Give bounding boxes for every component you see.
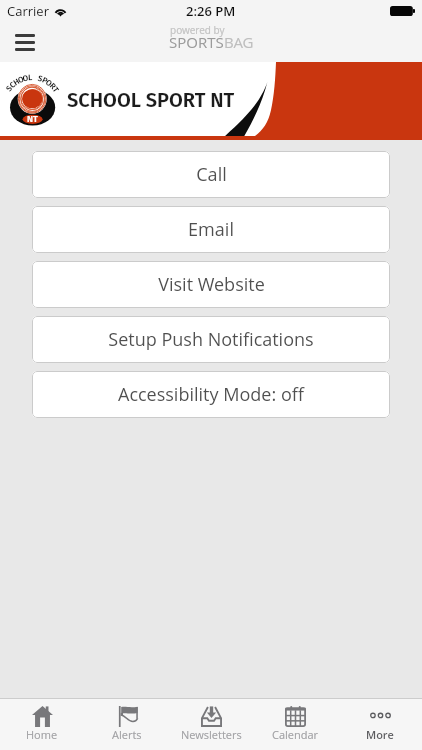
button[interactable]: Visit Website: [32, 261, 390, 308]
staticText: Home: [26, 727, 58, 742]
staticText: Call: [196, 162, 227, 187]
button[interactable]: Menu: [0, 22, 50, 62]
staticText: Visit Website: [158, 272, 265, 297]
button[interactable]: Newsletters: [169, 699, 253, 750]
staticText: powered by: [170, 23, 225, 37]
button[interactable]: Call: [32, 151, 390, 198]
staticText: SCHOOL SPORT NT: [67, 88, 235, 112]
staticText: Setup Push Notifications: [108, 327, 314, 352]
staticText: Newsletters: [181, 727, 242, 742]
staticText: SPORTS: [169, 32, 224, 52]
staticText: More: [366, 727, 394, 742]
button[interactable]: Setup Push Notifications: [32, 316, 390, 363]
button[interactable]: More: [338, 699, 422, 750]
staticText: Carrier: [7, 2, 49, 20]
staticText: Email: [188, 217, 234, 242]
button[interactable]: Alerts: [85, 699, 169, 750]
staticText: Calendar: [272, 727, 319, 742]
staticText: BAG: [224, 32, 254, 52]
button[interactable]: Calendar: [253, 699, 337, 750]
button[interactable]: Accessibility Mode: off: [32, 371, 390, 418]
button[interactable]: Email: [32, 206, 390, 253]
staticText: Alerts: [112, 727, 142, 742]
staticText: 2:26 PM: [186, 2, 236, 20]
staticText: Accessibility Mode: off: [118, 382, 304, 407]
button[interactable]: Home: [0, 699, 84, 750]
